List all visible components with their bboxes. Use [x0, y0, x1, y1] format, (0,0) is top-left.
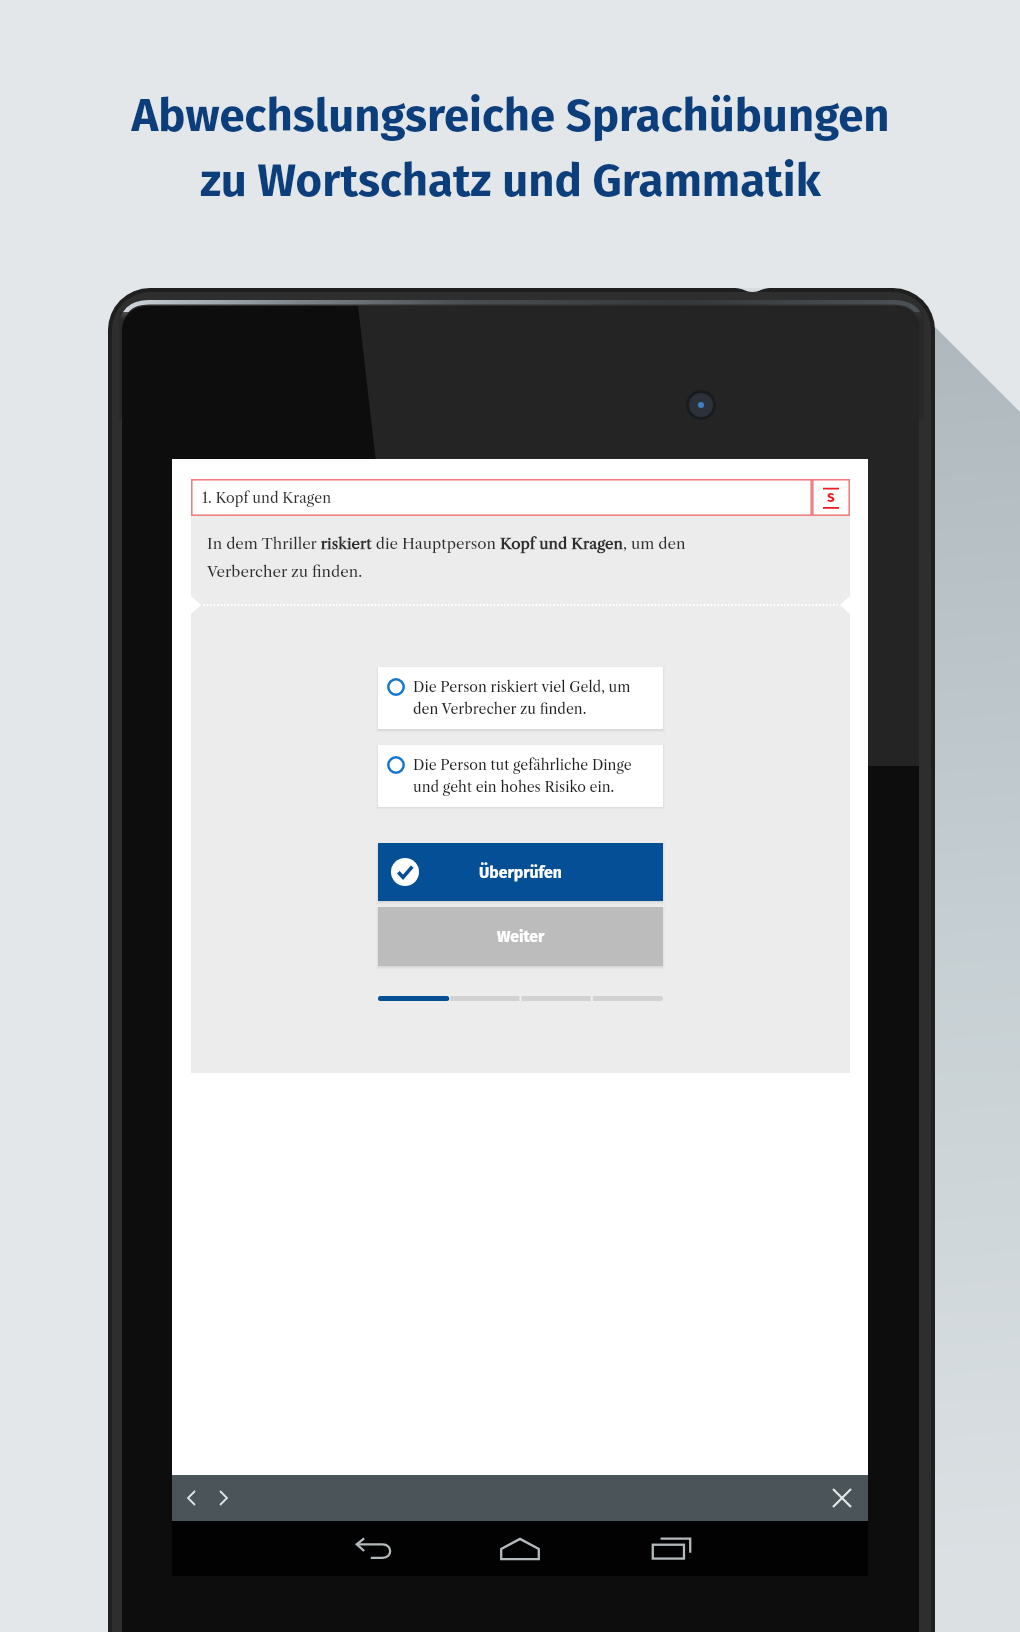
staticText: Weiter	[497, 927, 545, 946]
button[interactable]: Close	[815, 1475, 868, 1521]
staticText: Die Person tut gefährliche Dinge und geh…	[413, 756, 632, 796]
button[interactable]: Next	[207, 1475, 239, 1521]
button[interactable]: Previous	[175, 1475, 207, 1521]
staticText: Die Person riskiert viel Geld, um den Ve…	[413, 678, 631, 718]
staticText: Abwechslungsreiche Sprachübungen zu Wort…	[131, 88, 890, 208]
button[interactable]: Die Person riskiert viel Geld, um den Ve…	[378, 667, 663, 729]
button[interactable]: Audio	[812, 479, 850, 516]
button[interactable]: Weiter	[378, 907, 663, 966]
button[interactable]: 1. Kopf und Kragen	[191, 479, 812, 516]
staticText: In dem Thriller riskiert die Hauptperson…	[207, 534, 692, 581]
button[interactable]: Back	[348, 1521, 400, 1576]
button[interactable]: Home	[494, 1521, 546, 1576]
staticText: s	[827, 487, 835, 506]
button[interactable]: Die Person tut gefährliche Dinge und geh…	[378, 745, 663, 807]
staticText: Überprüfen	[479, 863, 562, 882]
button[interactable]: Überprüfen	[378, 843, 663, 901]
button[interactable]: Recents	[645, 1521, 697, 1576]
staticText: 1. Kopf und Kragen	[202, 489, 332, 506]
